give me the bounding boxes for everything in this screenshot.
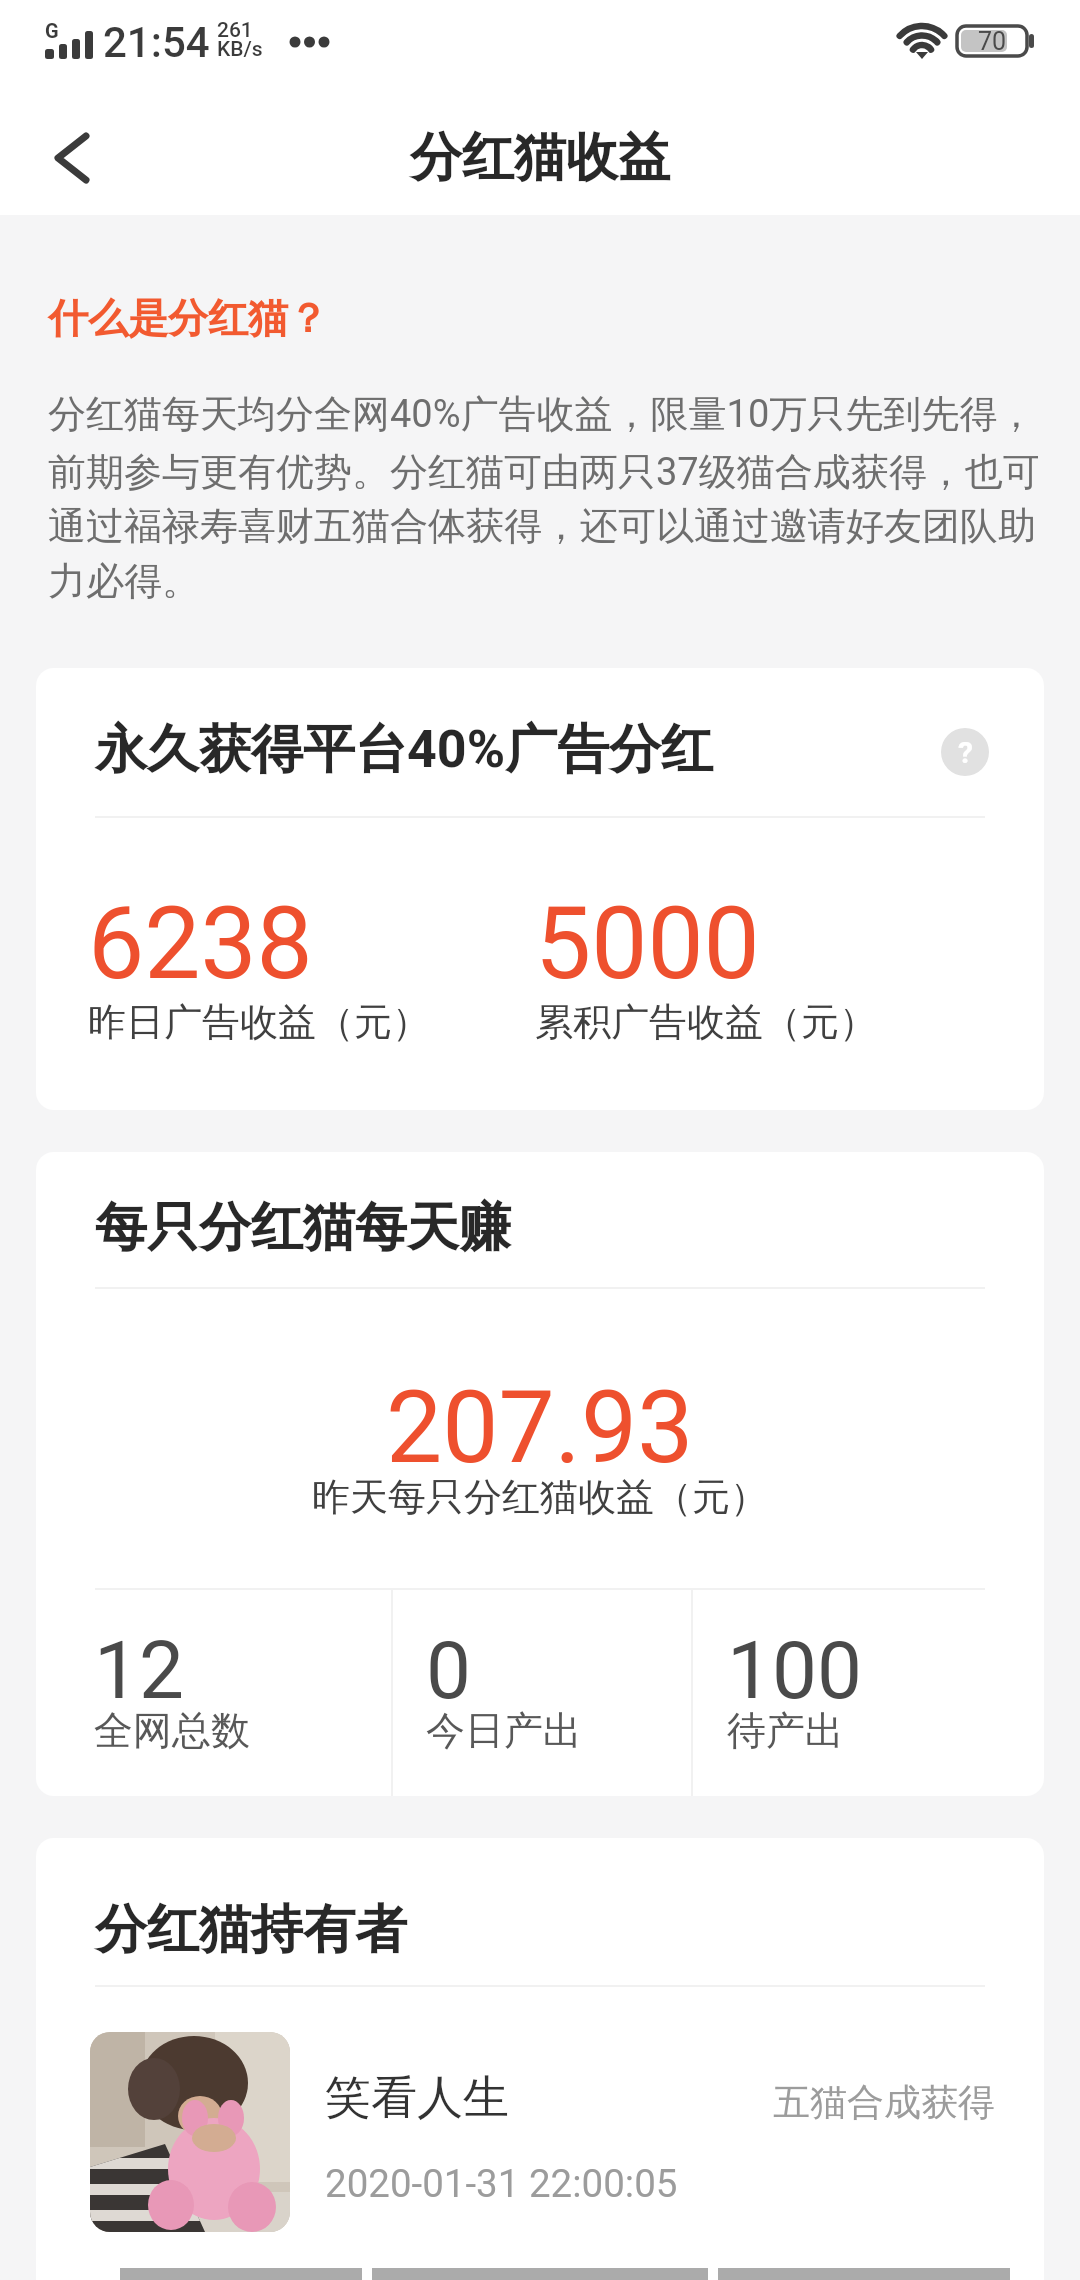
staticText: 100 [727, 1624, 862, 1718]
staticText: 全网总数 [94, 1706, 250, 1755]
button[interactable]: 笑看人生 [36, 2008, 1044, 2278]
staticText: 永久获得平台40%广告分红 [95, 717, 714, 783]
button[interactable] [90, 2032, 290, 2232]
staticText: KB/s [217, 37, 263, 62]
staticText: 笑看人生 [325, 2069, 509, 2127]
staticText: 0 [426, 1624, 471, 1718]
staticText: 分红猫每天均分全网40%广告收益，限量10万只先到先得， 前期参与更有优势。分红… [48, 390, 1038, 605]
staticText: 分红猫持有者 [95, 1897, 407, 1963]
staticText: 待产出 [727, 1706, 844, 1755]
staticText: 2020-01-31 22:00:05 [325, 2161, 678, 2206]
staticText: 五猫合成获得 [773, 2079, 995, 2126]
staticText: 5000 [535, 885, 760, 1002]
staticText: 207.93 [386, 1369, 694, 1486]
staticText: 21:54 [103, 18, 210, 67]
staticText: 昨日广告收益（元） [88, 998, 430, 1046]
staticText: 6238 [88, 885, 313, 1002]
staticText: 昨天每只分红猫收益（元） [312, 1473, 768, 1521]
staticText: ? [958, 735, 973, 770]
staticText: 今日产出 [426, 1706, 582, 1755]
staticText: 70 [978, 27, 1007, 56]
button[interactable]: ? [941, 728, 989, 776]
staticText: 每只分红猫每天赚 [95, 1195, 511, 1261]
staticText: 分红猫收益 [410, 125, 670, 191]
button[interactable] [38, 130, 104, 186]
staticText: 累积广告收益（元） [535, 998, 877, 1046]
staticText: 什么是分红猫？ [48, 293, 328, 343]
staticText: 261 [217, 18, 253, 43]
staticText: G [45, 19, 59, 42]
staticText: 12 [94, 1624, 184, 1718]
